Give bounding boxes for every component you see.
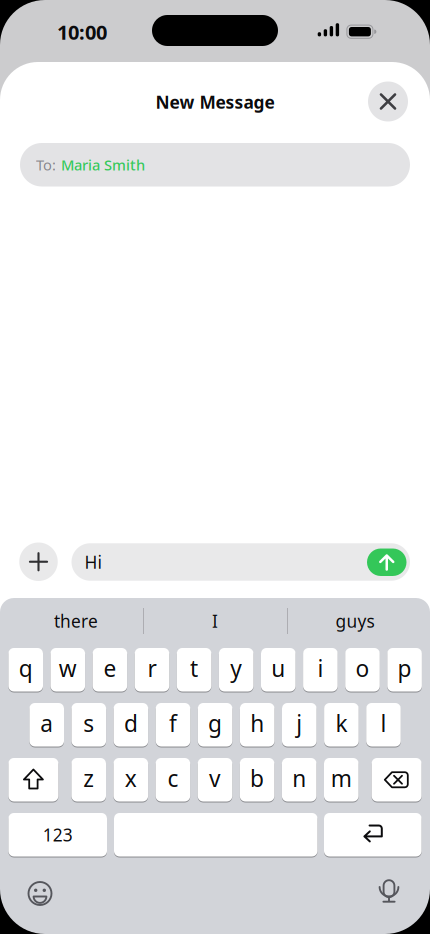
- staticText: guys: [335, 609, 374, 632]
- staticText: h: [250, 708, 264, 738]
- button[interactable]: t: [177, 647, 211, 692]
- staticText: e: [103, 653, 116, 683]
- staticText: u: [271, 653, 285, 683]
- staticText: z: [83, 763, 94, 793]
- button[interactable]: Return: [324, 812, 422, 857]
- button[interactable]: there: [11, 601, 141, 641]
- button[interactable]: y: [219, 647, 253, 692]
- staticText: o: [355, 653, 369, 683]
- button[interactable]: p: [387, 647, 422, 692]
- button[interactable]: b: [240, 757, 274, 802]
- staticText: Maria Smith: [61, 155, 145, 174]
- staticText: I: [212, 609, 218, 632]
- staticText: n: [292, 763, 306, 793]
- button[interactable]: guys: [290, 601, 420, 641]
- button[interactable]: n: [282, 757, 316, 802]
- button[interactable]: I: [150, 601, 280, 641]
- staticText: x: [125, 763, 137, 793]
- staticText: 10:00: [57, 19, 107, 45]
- staticText: a: [40, 708, 53, 738]
- staticText: s: [83, 708, 94, 738]
- staticText: l: [380, 708, 386, 738]
- button[interactable]: f: [156, 702, 190, 747]
- button[interactable]: c: [156, 757, 190, 802]
- staticText: i: [317, 653, 323, 683]
- staticText: m: [331, 763, 352, 793]
- button[interactable]: s: [71, 702, 106, 747]
- staticText: t: [190, 653, 198, 683]
- staticText: j: [296, 708, 302, 738]
- staticText: g: [208, 708, 222, 738]
- button[interactable]: g: [198, 702, 232, 747]
- button[interactable]: To:: [20, 143, 410, 186]
- button[interactable]: Space: [114, 812, 317, 857]
- button[interactable]: Add attachment: [19, 542, 58, 581]
- staticText: c: [167, 763, 178, 793]
- button[interactable]: Delete: [372, 757, 422, 802]
- button[interactable]: r: [135, 647, 169, 692]
- button[interactable]: z: [71, 757, 106, 802]
- button[interactable]: m: [324, 757, 359, 802]
- staticText: r: [147, 653, 156, 683]
- staticText: f: [169, 708, 177, 738]
- staticText: d: [124, 708, 138, 738]
- button[interactable]: q: [8, 647, 43, 692]
- button[interactable]: u: [261, 647, 296, 692]
- button[interactable]: k: [324, 702, 359, 747]
- button[interactable]: j: [282, 702, 317, 747]
- staticText: k: [335, 708, 347, 738]
- button[interactable]: o: [345, 647, 380, 692]
- staticText: v: [209, 763, 221, 793]
- button[interactable]: d: [114, 702, 148, 747]
- button[interactable]: Emoji: [18, 871, 62, 915]
- button[interactable]: a: [29, 702, 64, 747]
- button[interactable]: Send: [367, 548, 406, 576]
- staticText: y: [230, 653, 242, 683]
- staticText: b: [250, 763, 264, 793]
- button[interactable]: Close: [368, 81, 408, 121]
- button[interactable]: v: [198, 757, 232, 802]
- staticText: p: [398, 653, 412, 683]
- staticText: 123: [43, 823, 73, 846]
- button[interactable]: i: [303, 647, 338, 692]
- staticText: there: [54, 609, 98, 632]
- staticText: Hi: [84, 550, 101, 573]
- button[interactable]: Dictation: [367, 871, 411, 915]
- button[interactable]: x: [113, 757, 148, 802]
- staticText: To:: [36, 155, 56, 174]
- staticText: New Message: [155, 90, 274, 113]
- button[interactable]: Numbers: [8, 812, 107, 857]
- staticText: q: [19, 653, 33, 683]
- staticText: w: [59, 653, 77, 683]
- button[interactable]: w: [50, 647, 85, 692]
- button[interactable]: l: [366, 702, 401, 747]
- button[interactable]: h: [240, 702, 274, 747]
- button[interactable]: e: [93, 647, 127, 692]
- button[interactable]: Shift: [8, 757, 58, 802]
